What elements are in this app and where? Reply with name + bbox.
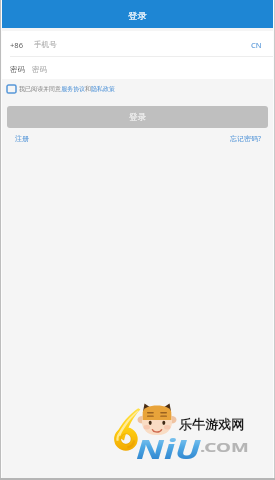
staticText: 乐牛游戏网 <box>179 416 244 432</box>
staticText: CN <box>251 40 262 50</box>
staticText: 我已阅读并同意 <box>19 85 61 93</box>
button[interactable]: 忘记密码? <box>230 134 262 144</box>
staticText: NiU <box>136 431 201 466</box>
staticText: 密码 <box>32 65 47 74</box>
button[interactable]: 密码 <box>32 65 262 74</box>
staticText: 手机号 <box>34 40 57 50</box>
staticText: 注册 <box>15 134 29 143</box>
staticText: 登录 <box>129 112 146 123</box>
staticText: .COM <box>200 438 249 456</box>
staticText: 登录 <box>128 10 147 22</box>
button[interactable]: 同意服务协议和隐私政策 <box>7 83 275 94</box>
staticText: 隐私政策 <box>91 85 115 93</box>
staticText: 忘记密码? <box>230 134 262 144</box>
button[interactable]: CN <box>251 40 262 50</box>
staticText: +86 <box>10 40 24 50</box>
staticText: 服务协议 <box>61 85 85 93</box>
staticText: 密码 <box>10 65 25 74</box>
button[interactable]: 手机号 <box>34 40 251 50</box>
staticText: 和 <box>85 85 91 93</box>
button[interactable]: 登录 <box>7 106 268 128</box>
button[interactable]: 注册 <box>15 134 29 143</box>
other: 同意服务协议和隐私政策 <box>7 85 16 93</box>
